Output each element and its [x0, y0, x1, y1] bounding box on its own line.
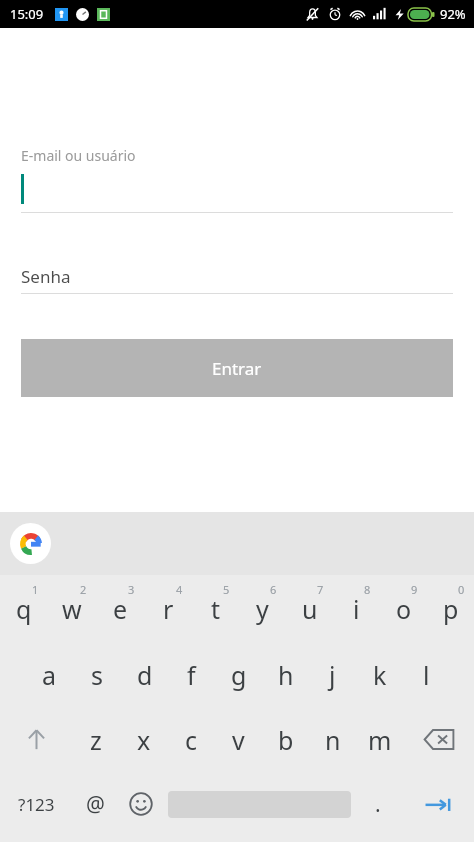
staticText: 92%	[440, 5, 466, 23]
staticText: g	[231, 658, 247, 692]
staticText: o	[396, 592, 412, 626]
button[interactable]: Google search	[10, 523, 51, 564]
button[interactable]: c	[168, 707, 215, 772]
staticText: z	[90, 723, 102, 757]
staticText: w	[62, 592, 82, 626]
button[interactable]: Entrar	[21, 339, 453, 397]
button[interactable]: g	[215, 642, 262, 707]
button[interactable]: r	[144, 575, 192, 642]
staticText: 0	[458, 582, 465, 597]
staticText: 6	[270, 582, 277, 597]
button[interactable]: v	[215, 707, 262, 772]
staticText: 7	[317, 582, 324, 597]
button[interactable]: .	[355, 772, 401, 836]
staticText: Entrar	[212, 357, 262, 380]
staticText: e	[113, 592, 128, 626]
button[interactable]	[21, 165, 453, 212]
button[interactable]: b	[262, 707, 309, 772]
button[interactable]: j	[309, 642, 356, 707]
button[interactable]: Emoji	[118, 772, 164, 836]
button[interactable]: m	[356, 707, 403, 772]
staticText: q	[16, 592, 32, 626]
staticText: k	[373, 658, 387, 692]
staticText: 3	[128, 582, 135, 597]
staticText: 2	[80, 582, 87, 597]
button[interactable]: i	[333, 575, 380, 642]
button[interactable]: Next	[401, 772, 474, 836]
staticText: Senha	[21, 265, 71, 288]
staticText: r	[163, 592, 174, 626]
staticText: s	[91, 658, 103, 692]
staticText: i	[353, 592, 360, 626]
button[interactable]: n	[309, 707, 356, 772]
button[interactable]: x	[120, 707, 168, 772]
staticText: ?123	[18, 793, 55, 816]
staticText: E-mail ou usuário	[21, 146, 136, 165]
staticText: 1	[32, 582, 39, 597]
staticText: l	[423, 658, 430, 692]
button[interactable]: e	[96, 575, 144, 642]
staticText: n	[325, 723, 341, 757]
staticText: y	[256, 592, 269, 626]
staticText: m	[368, 723, 392, 757]
button[interactable]: ?123	[0, 772, 72, 836]
button[interactable]: q	[0, 575, 48, 642]
staticText: 4	[176, 582, 183, 597]
staticText: 9	[411, 582, 418, 597]
staticText: 15:09	[10, 5, 44, 23]
button[interactable]: Senha	[21, 259, 453, 293]
staticText: t	[211, 592, 221, 626]
button[interactable]: y	[239, 575, 286, 642]
button[interactable]: t	[192, 575, 239, 642]
staticText: d	[137, 658, 153, 692]
staticText: .	[375, 790, 381, 819]
button[interactable]: Shift	[0, 707, 72, 772]
button[interactable]: Space	[168, 772, 351, 836]
button[interactable]: o	[380, 575, 427, 642]
button[interactable]: p	[427, 575, 474, 642]
staticText: f	[187, 658, 196, 692]
staticText: u	[302, 592, 318, 626]
button[interactable]: Backspace	[403, 707, 474, 772]
button[interactable]: f	[168, 642, 215, 707]
button[interactable]: @	[72, 772, 118, 836]
button[interactable]: s	[73, 642, 121, 707]
button[interactable]: a	[25, 642, 73, 707]
staticText: c	[185, 723, 198, 757]
button[interactable]: l	[403, 642, 450, 707]
button[interactable]: z	[72, 707, 120, 772]
staticText: a	[42, 658, 57, 692]
button[interactable]: k	[356, 642, 403, 707]
staticText: h	[278, 658, 294, 692]
staticText: p	[443, 592, 459, 626]
button[interactable]: h	[262, 642, 309, 707]
button[interactable]: d	[121, 642, 168, 707]
button[interactable]: u	[286, 575, 333, 642]
staticText: b	[278, 723, 294, 757]
button[interactable]: w	[48, 575, 96, 642]
staticText: v	[232, 723, 245, 757]
staticText: j	[329, 658, 336, 692]
staticText: @	[86, 790, 105, 819]
staticText: 8	[364, 582, 371, 597]
staticText: x	[137, 723, 151, 757]
staticText: 5	[223, 582, 230, 597]
